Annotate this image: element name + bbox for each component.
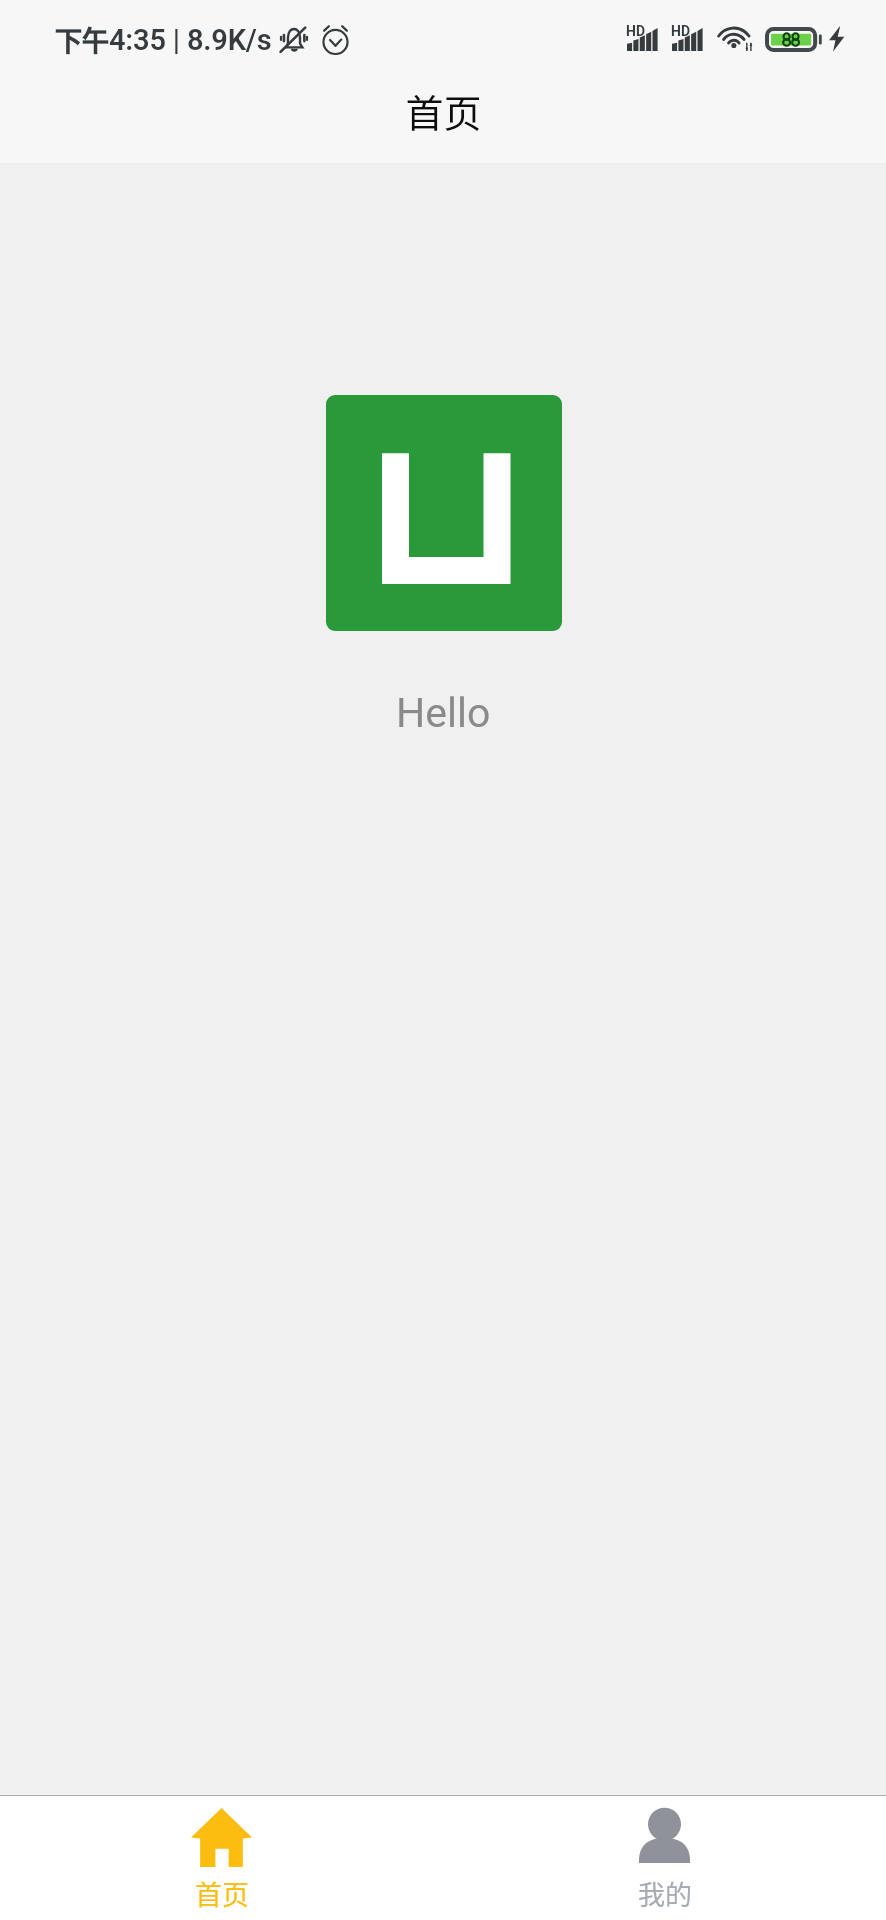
staticText: HD — [626, 23, 645, 39]
staticText: Hello — [396, 689, 491, 737]
button[interactable]: 我的 — [443, 1796, 886, 1920]
staticText: 4:35 | 8.9K/s — [109, 23, 272, 57]
staticText: 下午 — [55, 20, 109, 59]
staticText: HD — [671, 23, 690, 39]
staticText: 我的 — [638, 1874, 692, 1913]
staticText: 首页 — [405, 83, 482, 138]
staticText: 首页 — [195, 1874, 249, 1913]
staticText: 下午 — [55, 20, 109, 59]
button[interactable]: 首页 — [0, 1796, 443, 1920]
